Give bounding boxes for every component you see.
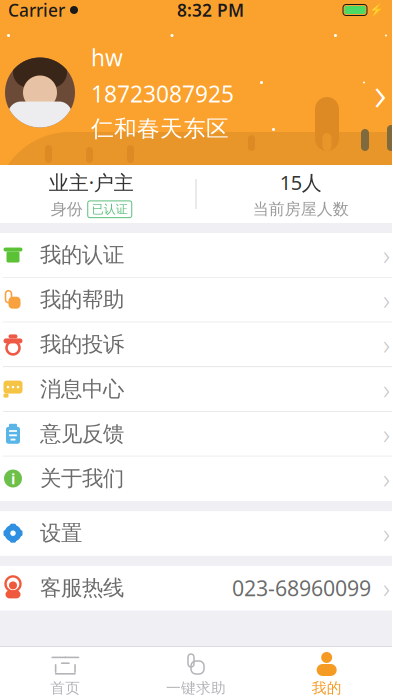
button[interactable]: 我的帮助 — [0, 278, 393, 322]
staticText: 8:32 PM — [177, 0, 244, 21]
staticText: 已认证 — [92, 202, 128, 217]
button[interactable]: 我的认证 — [0, 233, 393, 278]
button[interactable]: 设置 — [0, 511, 393, 556]
staticText: i — [11, 469, 15, 488]
staticText: › — [383, 237, 390, 273]
staticText: › — [383, 570, 390, 606]
staticText: 消息中心 — [40, 376, 124, 402]
staticText: › — [383, 282, 390, 317]
button[interactable]: 客服热线 — [0, 566, 393, 611]
button[interactable]: 首页 — [0, 646, 131, 696]
staticText: 设置 — [40, 520, 82, 546]
staticText: 我的帮助 — [40, 287, 124, 313]
button[interactable]: 我的投诉 — [0, 322, 393, 367]
staticText: › — [383, 461, 390, 496]
staticText: › — [374, 61, 387, 124]
staticText: ⚡ — [369, 3, 384, 17]
staticText: › — [383, 371, 390, 407]
button[interactable]: i — [0, 456, 393, 501]
staticText: hw — [91, 42, 123, 73]
button[interactable]: 消息中心 — [0, 367, 393, 412]
staticText: 关于我们 — [40, 465, 124, 492]
staticText: 我的 — [312, 679, 342, 696]
staticText: 我的认证 — [40, 242, 124, 268]
button[interactable]: 意见反馈 — [0, 412, 393, 456]
staticText: 首页 — [50, 679, 80, 696]
staticText: 一键求助 — [166, 679, 226, 696]
staticText: 意见反馈 — [40, 421, 124, 447]
staticText: Carrier — [8, 0, 65, 21]
staticText: 身份 — [51, 199, 83, 219]
button[interactable]: hw — [0, 20, 393, 165]
staticText: 客服热线 — [40, 575, 124, 601]
staticText: 当前房屋人数 — [253, 199, 349, 219]
staticText: › — [383, 515, 390, 551]
button[interactable]: 一键求助 — [131, 646, 261, 696]
staticText: › — [383, 327, 390, 362]
staticText: 023-68960099 — [232, 574, 371, 602]
staticText: 15人 — [280, 169, 322, 195]
staticText: 业主·户主 — [49, 169, 134, 195]
staticText: 18723087925 — [91, 79, 234, 109]
staticText: 我的投诉 — [40, 331, 124, 357]
button[interactable]: 我的 — [261, 646, 392, 696]
staticText: › — [383, 416, 390, 451]
staticText: 仁和春天东区 — [91, 115, 229, 142]
